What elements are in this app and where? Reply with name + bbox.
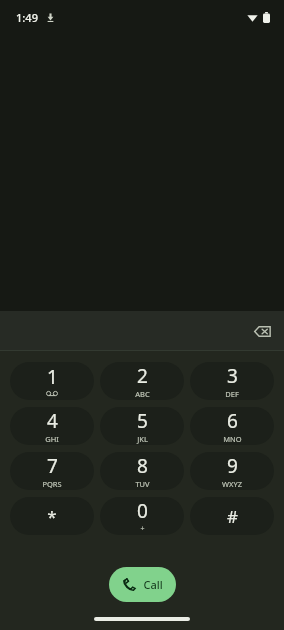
staticText: WXYZ: [222, 479, 242, 489]
staticText: JKL: [137, 434, 148, 444]
staticText: 5: [137, 408, 148, 434]
staticText: 1:49: [16, 10, 38, 25]
button[interactable]: 4: [10, 407, 94, 445]
button[interactable]: 7: [10, 452, 94, 490]
staticText: 9: [227, 453, 238, 479]
staticText: 8: [137, 453, 148, 479]
button[interactable]: 6: [190, 407, 274, 445]
staticText: MNO: [223, 434, 242, 444]
staticText: 7: [47, 453, 58, 479]
staticText: ABC: [135, 389, 150, 399]
staticText: PQRS: [42, 479, 62, 489]
staticText: 4: [47, 408, 58, 434]
staticText: GHI: [45, 434, 59, 444]
button[interactable]: Call: [109, 567, 176, 602]
button[interactable]: *: [10, 497, 94, 535]
staticText: DEF: [225, 389, 239, 399]
button[interactable]: 0: [100, 497, 184, 535]
staticText: 2: [137, 363, 148, 389]
staticText: 3: [227, 363, 238, 389]
staticText: 1: [47, 364, 58, 390]
staticText: #: [227, 505, 238, 528]
button[interactable]: 9: [190, 452, 274, 490]
staticText: 0: [137, 498, 148, 524]
button[interactable]: 5: [100, 407, 184, 445]
staticText: 6: [227, 408, 238, 434]
staticText: TUV: [135, 479, 150, 489]
button[interactable]: Backspace: [245, 314, 279, 348]
button[interactable]: 8: [100, 452, 184, 490]
staticText: *: [47, 505, 57, 528]
button[interactable]: 1: [10, 362, 94, 400]
button[interactable]: #: [190, 497, 274, 535]
button[interactable]: 2: [100, 362, 184, 400]
button[interactable]: 3: [190, 362, 274, 400]
staticText: Call: [143, 577, 163, 592]
staticText: +: [140, 524, 145, 534]
